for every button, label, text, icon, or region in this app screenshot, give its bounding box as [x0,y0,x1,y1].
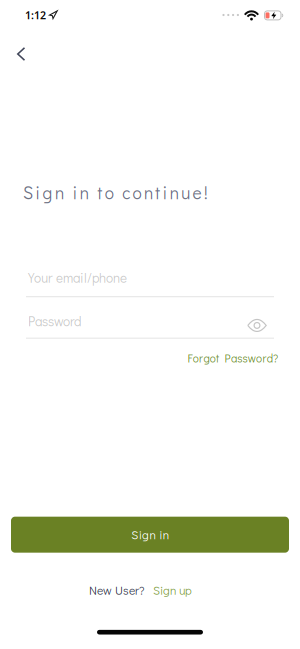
staticText: New User? [89,582,145,598]
staticText: Forgot Password? [187,351,278,366]
staticText: Password [28,312,81,330]
button[interactable]: Sign up [153,582,192,598]
button[interactable]: Show password [247,312,274,326]
button[interactable]: Forgot Password? [187,351,278,366]
staticText: Sign up [153,582,192,598]
button[interactable]: Sign in [11,517,289,553]
staticText: Your email/phone [28,269,127,286]
staticText: Sign in to continue! [23,181,208,204]
button[interactable]: Back [0,39,37,69]
staticText: 1:12 [25,8,46,22]
staticText: Sign in [131,527,169,542]
